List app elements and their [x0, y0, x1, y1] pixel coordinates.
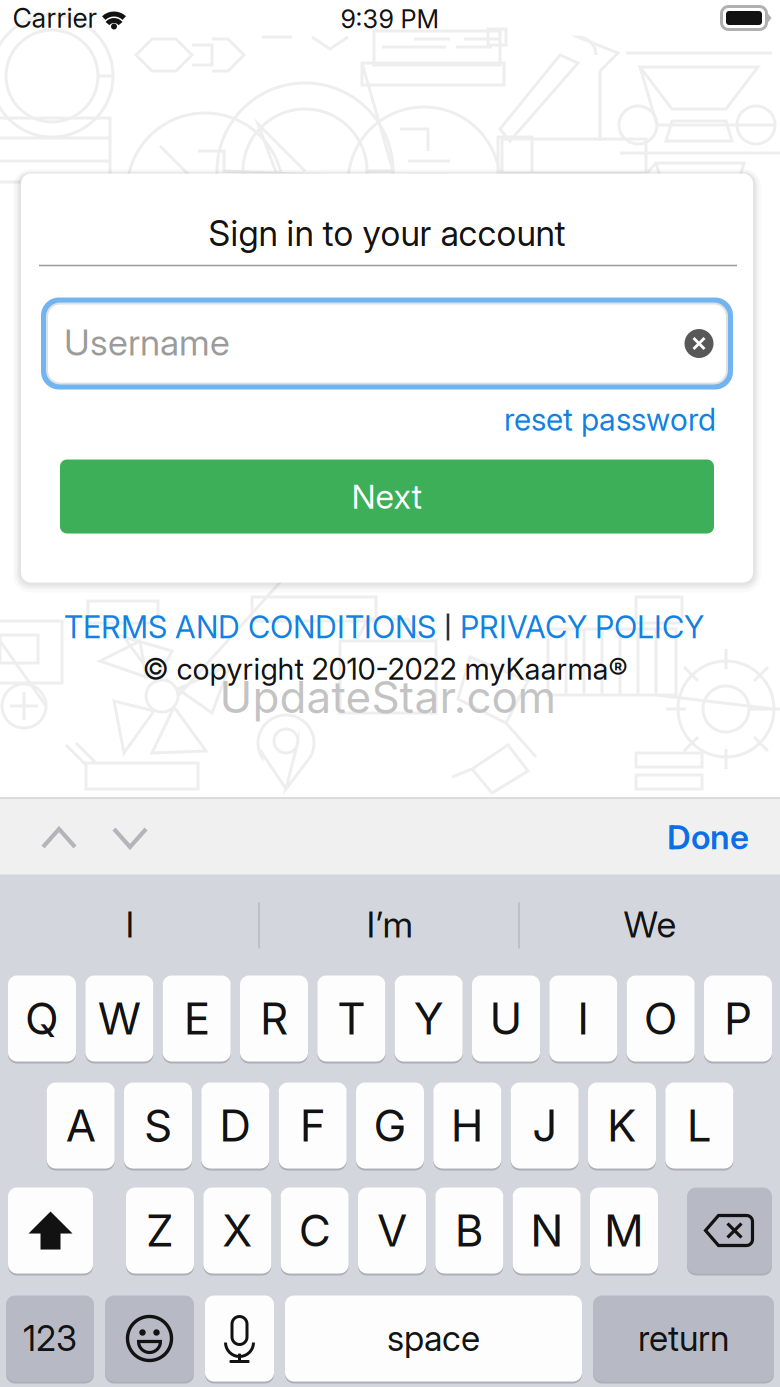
button[interactable]: TERMS AND CONDITIONS	[58, 605, 442, 649]
staticText: L	[687, 1099, 712, 1151]
button[interactable]: B	[435, 1186, 503, 1275]
staticText: 9:39 PM	[340, 4, 439, 34]
button[interactable]: PRIVACY POLICY	[454, 605, 710, 649]
button[interactable]: I	[549, 974, 617, 1063]
staticText: M	[604, 1204, 644, 1256]
staticText: F	[300, 1099, 326, 1151]
button[interactable]	[105, 1294, 194, 1383]
staticText: return	[638, 1318, 729, 1359]
staticText: Q	[25, 992, 59, 1044]
staticText: J	[532, 1099, 557, 1151]
staticText: A	[66, 1099, 96, 1151]
staticText: B	[455, 1204, 484, 1256]
button[interactable]: H	[433, 1081, 501, 1170]
button[interactable]: S	[124, 1081, 192, 1170]
staticText: I	[125, 903, 134, 946]
button[interactable]	[8, 1186, 93, 1275]
staticText: K	[607, 1099, 637, 1151]
staticText: space	[387, 1318, 480, 1359]
button[interactable]: 123	[6, 1294, 94, 1383]
staticText: D	[219, 1099, 251, 1151]
button[interactable]: K	[588, 1081, 656, 1170]
staticText: P	[724, 992, 752, 1044]
staticText: reset password	[504, 401, 716, 438]
button[interactable]: R	[240, 974, 308, 1063]
staticText: V	[377, 1204, 407, 1256]
button[interactable]: W	[85, 974, 153, 1063]
button[interactable]	[687, 1186, 772, 1275]
staticText: Done	[667, 817, 749, 857]
button[interactable]: Done	[649, 801, 767, 873]
button[interactable]: P	[704, 974, 772, 1063]
button[interactable]: Y	[395, 974, 463, 1063]
button[interactable]: E	[163, 974, 231, 1063]
staticText: I	[577, 992, 589, 1044]
staticText: X	[222, 1204, 252, 1256]
staticText: PRIVACY POLICY	[460, 609, 704, 645]
staticText: Z	[146, 1204, 174, 1256]
button[interactable]: reset password	[496, 395, 724, 444]
staticText: TERMS AND CONDITIONS	[64, 609, 436, 645]
staticText: I’m	[366, 903, 413, 946]
button[interactable]: M	[590, 1186, 658, 1275]
button[interactable]: Q	[8, 974, 76, 1063]
button[interactable]: T	[317, 974, 385, 1063]
button[interactable]: Next field	[92, 806, 168, 870]
button[interactable]: Clear text	[676, 320, 722, 366]
staticText: Next	[351, 477, 422, 516]
staticText: W	[98, 992, 141, 1044]
button[interactable]: G	[356, 1081, 424, 1170]
button[interactable]: A	[47, 1081, 115, 1170]
button[interactable]: Z	[126, 1186, 194, 1275]
staticText: Sign in to your account	[208, 213, 565, 254]
staticText: H	[451, 1099, 484, 1151]
staticText: R	[260, 992, 288, 1044]
staticText: S	[144, 1099, 172, 1151]
staticText: G	[373, 1099, 406, 1151]
button[interactable]: return	[593, 1294, 774, 1383]
staticText: © copyright 2010-2022 myKaarma®	[142, 652, 627, 686]
button[interactable]: Next	[60, 459, 714, 533]
staticText: Username	[64, 321, 230, 364]
button[interactable]: U	[472, 974, 540, 1063]
staticText: N	[530, 1204, 563, 1256]
button[interactable]: N	[513, 1186, 581, 1275]
button[interactable]: C	[281, 1186, 349, 1275]
staticText: Carrier	[12, 2, 97, 34]
staticText: O	[644, 992, 678, 1044]
staticText: U	[489, 992, 522, 1044]
button[interactable]: L	[665, 1081, 733, 1170]
button[interactable]: D	[201, 1081, 269, 1170]
button[interactable]: V	[358, 1186, 426, 1275]
button[interactable]: F	[279, 1081, 347, 1170]
staticText: T	[337, 992, 365, 1044]
staticText: We	[623, 903, 676, 946]
staticText: Y	[414, 992, 444, 1044]
staticText: 123	[23, 1318, 77, 1359]
staticText: C	[299, 1204, 331, 1256]
button[interactable]: J	[511, 1081, 579, 1170]
button[interactable]: O	[627, 974, 695, 1063]
button[interactable]: Previous field	[21, 806, 97, 870]
button[interactable]: X	[203, 1186, 271, 1275]
button[interactable]: space	[285, 1294, 582, 1383]
staticText: E	[184, 992, 210, 1044]
button[interactable]	[205, 1294, 274, 1383]
staticText: UpdateStar.com	[219, 671, 556, 723]
